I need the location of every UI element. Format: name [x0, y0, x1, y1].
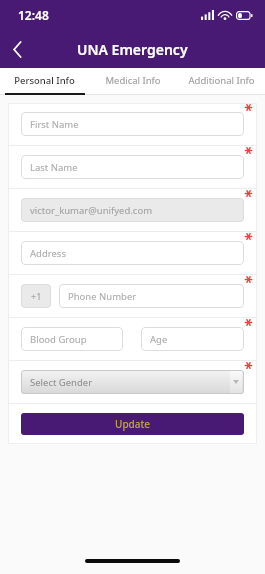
button[interactable]: Last Name	[21, 155, 244, 179]
button[interactable]: Back	[0, 32, 34, 66]
button[interactable]: Personal Info	[0, 68, 89, 93]
button[interactable]: Blood Group	[21, 327, 123, 351]
button[interactable]: Address	[21, 241, 244, 265]
button[interactable]: Update	[21, 413, 244, 435]
button[interactable]: Select Gender	[21, 370, 244, 394]
staticText: Age	[150, 333, 168, 346]
staticText: Medical Info	[105, 74, 161, 87]
staticText: Address	[30, 247, 66, 260]
staticText: Blood Group	[30, 333, 87, 346]
staticText: Additional Info	[188, 74, 255, 87]
button[interactable]: Medical Info	[89, 68, 177, 93]
staticText: +1	[31, 290, 42, 302]
staticText: Personal Info	[14, 74, 75, 87]
button[interactable]: First Name	[21, 112, 244, 136]
staticText: 12:48	[18, 7, 49, 23]
button[interactable]: +1	[21, 284, 51, 308]
staticText: victor_kumar@unifyed.com	[30, 204, 153, 217]
button[interactable]: Age	[141, 327, 244, 351]
button[interactable]: Phone Number	[59, 284, 244, 308]
staticText: Update	[115, 417, 151, 431]
staticText: Phone Number	[68, 290, 137, 303]
button[interactable]: Additional Info	[177, 68, 265, 93]
staticText: Last Name	[30, 161, 78, 174]
staticText: Select Gender	[30, 376, 93, 389]
staticText: First Name	[30, 118, 79, 131]
button[interactable]: victor_kumar@unifyed.com	[21, 198, 244, 222]
staticText: UNA Emergency	[77, 40, 188, 59]
